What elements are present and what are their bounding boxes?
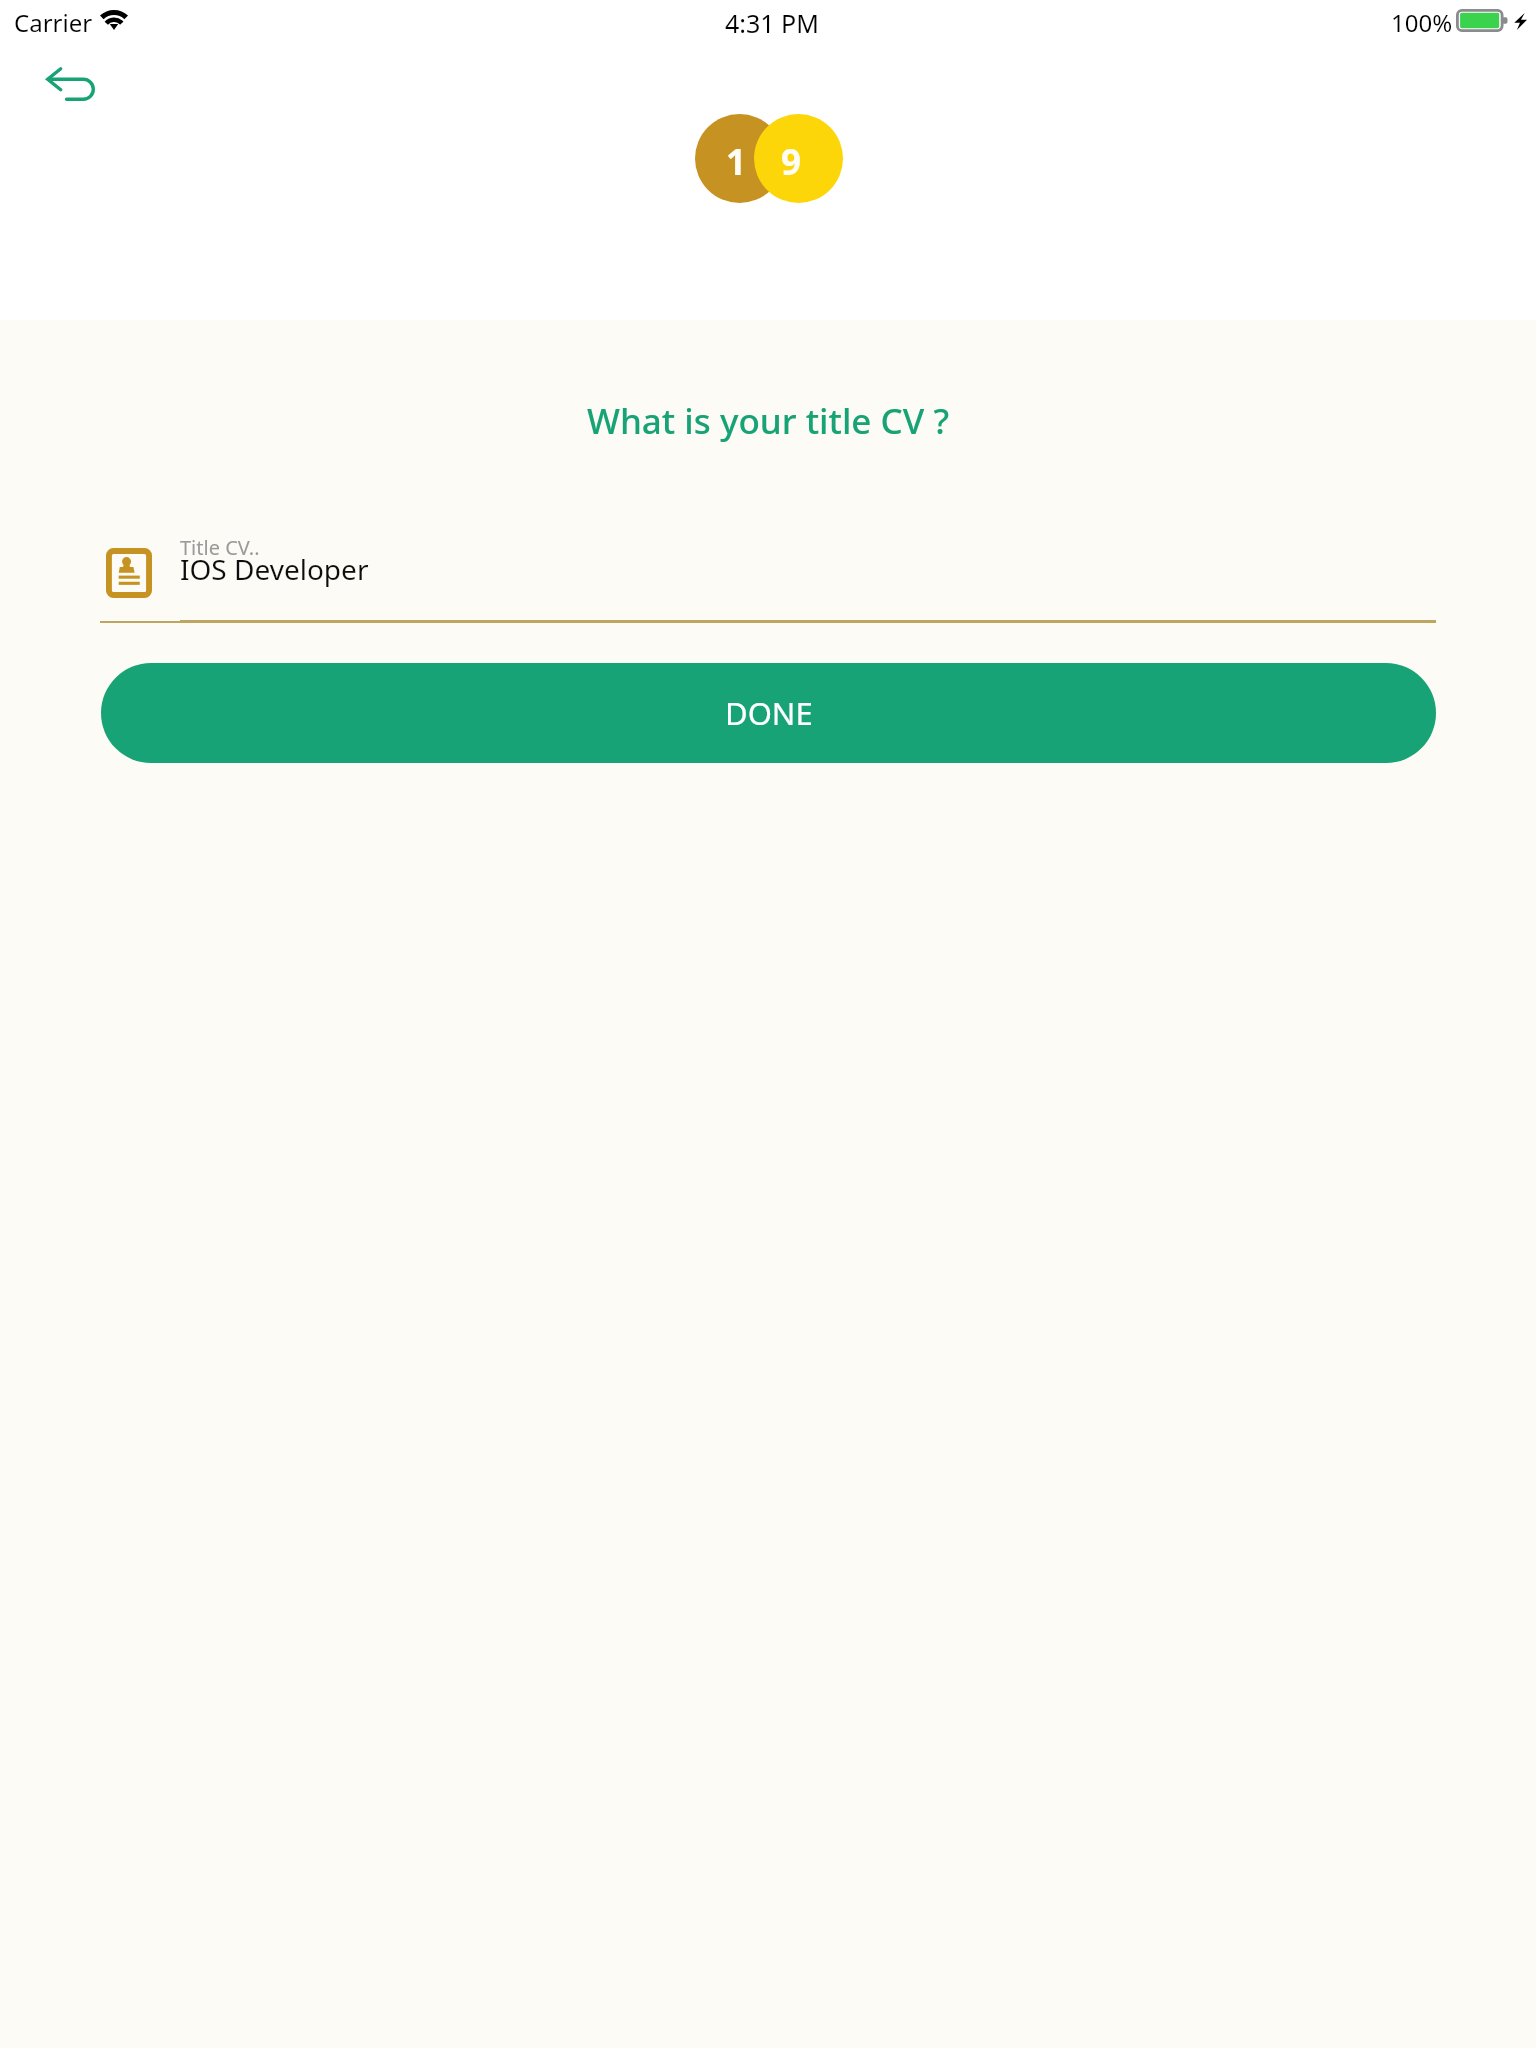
staticText: IOS Developer bbox=[180, 550, 369, 588]
staticText: What is your title CV ? bbox=[0, 397, 1536, 445]
staticText: 1 bbox=[726, 138, 747, 186]
staticText: Carrier bbox=[14, 6, 93, 39]
staticText: 4:31 PM bbox=[725, 6, 819, 40]
staticText: DONE bbox=[725, 692, 813, 734]
button[interactable]: Back bbox=[22, 52, 118, 114]
button[interactable]: Title CV.. bbox=[100, 520, 1436, 623]
staticText: Title CV.. bbox=[180, 534, 260, 561]
staticText: 9 bbox=[781, 138, 802, 186]
button[interactable]: DONE bbox=[101, 663, 1436, 763]
staticText: 100% bbox=[1391, 6, 1453, 39]
